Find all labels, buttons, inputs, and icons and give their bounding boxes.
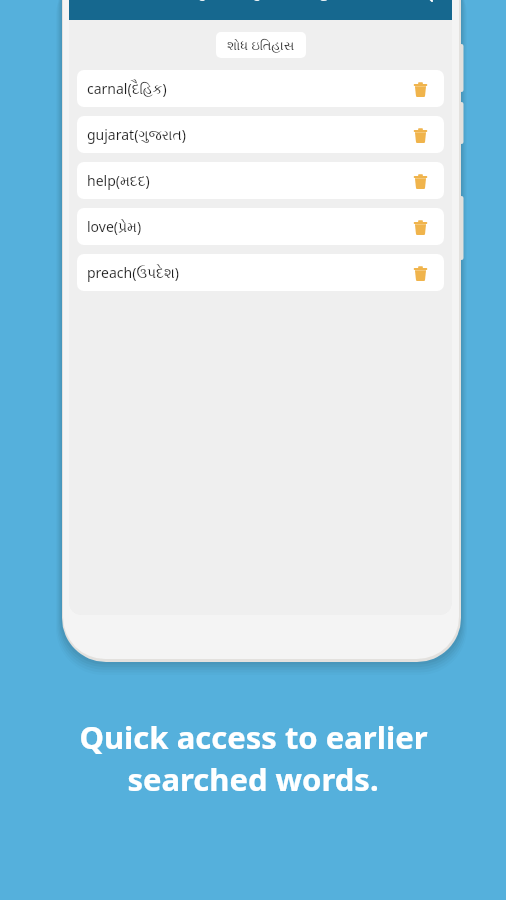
staticText: શોધ ઇતિહાસ xyxy=(227,36,295,54)
button[interactable]: gujarat(ગુજરાત) xyxy=(77,116,444,153)
button[interactable]: શોધ ઇતિહાસ xyxy=(216,32,306,58)
button[interactable]: carnal(દૈહિક) xyxy=(77,70,444,107)
button[interactable]: love(પ્રેમ) xyxy=(77,208,444,245)
button[interactable]: preach(ઉપદેશ) xyxy=(77,254,444,291)
staticText: carnal(દૈહિક) xyxy=(87,79,406,98)
staticText: Quick access to earlier xyxy=(79,716,428,758)
staticText: searched words. xyxy=(127,758,379,800)
staticText: help(મદદ) xyxy=(87,171,406,190)
button[interactable]: Delete carnal(દૈહિક) xyxy=(406,75,434,103)
button[interactable]: Delete preach(ઉપદેશ) xyxy=(406,259,434,287)
button[interactable]: help(મદદ) xyxy=(77,162,444,199)
button[interactable]: Delete help(મદદ) xyxy=(406,167,434,195)
staticText: love(પ્રેમ) xyxy=(87,217,406,236)
button[interactable]: Delete gujarat(ગુજરાત) xyxy=(406,121,434,149)
staticText: preach(ઉપદેશ) xyxy=(87,263,406,282)
staticText: gujarat(ગુજરાત) xyxy=(87,125,406,144)
staticText: ગુજરાતી નુ શબ્દ સંગ્રહ xyxy=(193,0,329,2)
button[interactable]: Search xyxy=(403,0,443,12)
button[interactable]: Delete love(પ્રેમ) xyxy=(406,213,434,241)
